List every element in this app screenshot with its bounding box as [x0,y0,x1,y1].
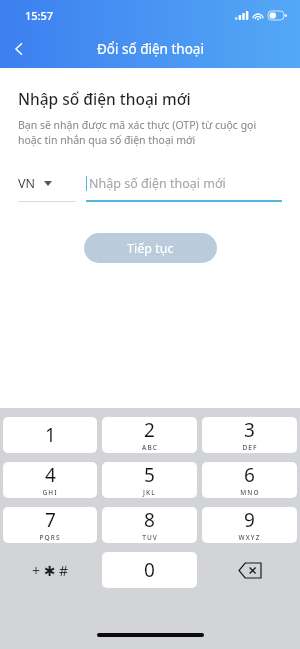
button[interactable]: 6 [202,462,297,498]
staticText: Tiếp tục [127,240,174,257]
button[interactable]: 2 [102,417,197,453]
staticText: 15:57 [25,8,54,23]
staticText: GHI [42,488,58,497]
staticText: 1 [45,422,56,448]
staticText: 8 [144,507,155,533]
staticText: 6 [244,462,255,488]
staticText: PQRS [39,533,61,542]
button[interactable]: 7 [3,507,97,543]
button[interactable]: VN [18,175,76,202]
button[interactable]: 8 [102,507,197,543]
button[interactable]: 3 [202,417,297,453]
button[interactable]: Nhập số điện thoại mới [86,175,282,202]
staticText: 5 [144,462,155,488]
staticText: 7 [45,507,56,533]
staticText: Nhập số điện thoại mới [89,175,226,192]
button[interactable]: 9 [202,507,297,543]
staticText: + ✱ # [32,561,69,580]
staticText: 2 [144,417,155,443]
staticText: Đổi số điện thoại [97,40,204,58]
staticText: 4 [45,462,56,488]
staticText: MNO [240,488,260,497]
staticText: VN [18,175,36,192]
button[interactable]: Backspace [202,552,297,588]
staticText: 9 [244,507,255,533]
staticText: 3 [244,417,255,443]
staticText: WXYZ [238,533,261,542]
button[interactable]: 0 [102,552,197,588]
button[interactable]: Tiếp tục [84,233,217,263]
staticText: ABC [142,443,158,452]
button[interactable]: 4 [3,462,97,498]
staticText: 0 [144,557,155,583]
button[interactable]: Symbols [3,552,97,588]
staticText: Nhập số điện thoại mới [18,88,191,109]
button[interactable]: 5 [102,462,197,498]
staticText: DEF [242,443,258,452]
staticText: JKL [143,488,156,497]
button[interactable]: 1 [3,417,97,453]
staticText: TUV [142,533,158,542]
button[interactable]: Back [0,30,38,68]
staticText: Bạn sẽ nhận được mã xác thực (OTP) từ cu… [18,118,257,147]
